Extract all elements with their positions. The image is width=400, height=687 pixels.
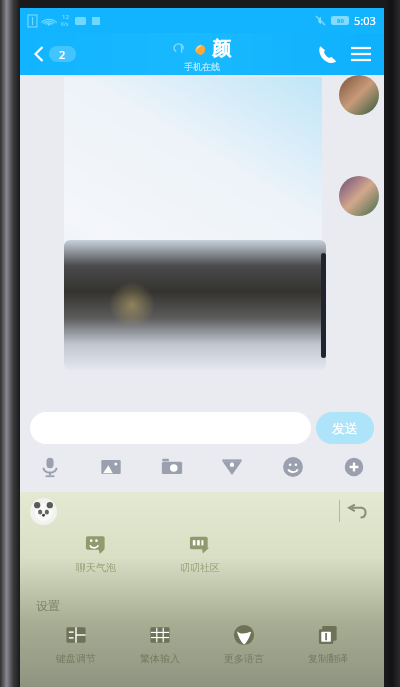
button[interactable]: Call [310,37,344,71]
button[interactable] [30,412,311,444]
button[interactable]: Avatar [339,75,379,115]
staticText: 复制翻译 [308,652,348,665]
staticText: 叨叨社区 [180,561,220,574]
staticText: 5:03 [354,13,376,28]
button[interactable]: Emoji [277,451,309,483]
button[interactable]: 叨叨社区 [164,530,236,576]
staticText: 颜 [212,37,231,61]
button[interactable]: Undo [340,494,374,528]
button[interactable]: 繁体输入 [124,621,196,667]
button[interactable]: Photo [95,451,127,483]
button[interactable]: 聊天气泡 [60,530,132,576]
button[interactable]: Back [28,41,80,67]
staticText: 2 [59,47,66,62]
staticText: 键盘调节 [56,652,96,665]
button[interactable]: Voice [34,451,66,483]
button[interactable]: Panda [30,498,57,525]
staticText: 发送 [332,420,358,436]
button[interactable]: 发送 [316,412,374,444]
button[interactable]: Camera [156,451,188,483]
staticText: K/s [61,21,69,28]
button[interactable]: Mail [216,451,248,483]
staticText: 聊天气泡 [76,561,116,574]
button[interactable]: Avatar [339,176,379,216]
staticText: 繁体输入 [140,652,180,665]
staticText: 设置 [36,598,60,613]
button[interactable]: 复制翻译 [292,621,364,667]
button[interactable]: 键盘调节 [40,621,112,667]
button[interactable]: 更多语言 [208,621,280,667]
staticText: 手机在线 [184,61,220,72]
staticText: 80 [337,17,344,25]
staticText: 更多语言 [224,652,264,665]
button[interactable]: More [338,451,370,483]
button[interactable]: Menu [344,37,378,71]
staticText: 12 [62,13,69,21]
